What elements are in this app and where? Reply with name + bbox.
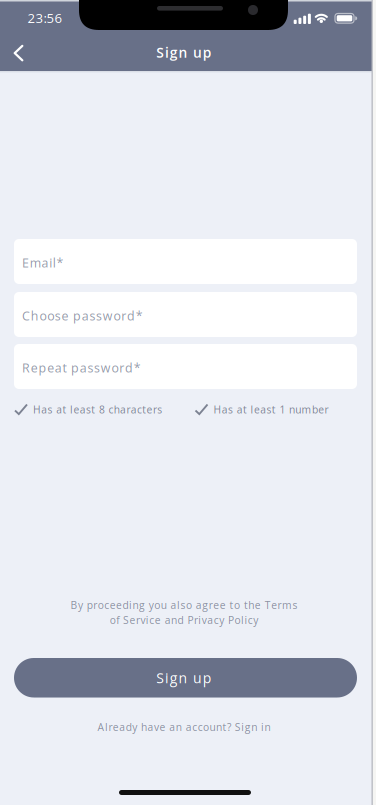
staticText: Sign up: [156, 668, 212, 687]
staticText: Email*: [22, 254, 63, 271]
staticText: 23:56: [27, 9, 62, 27]
staticText: Sign up: [156, 43, 212, 62]
button[interactable]: Sign up: [14, 658, 357, 697]
staticText: Has at least 1 number: [213, 402, 328, 416]
button[interactable]: Choose password*: [14, 292, 357, 337]
staticText: Has at least 8 characters: [33, 402, 162, 416]
button[interactable]: By proceeding you also agree to the Term…: [0, 598, 368, 627]
staticText: Repeat password*: [22, 359, 141, 376]
staticText: of Service and Privacy Policy: [110, 613, 258, 627]
button[interactable]: Email*: [14, 239, 357, 284]
button[interactable]: Repeat password*: [14, 344, 357, 389]
button[interactable]: Already have an account? Sign in: [0, 720, 368, 734]
staticText: By proceeding you also agree to the Term…: [70, 598, 297, 612]
button[interactable]: Back: [0, 33, 40, 73]
staticText: Choose password*: [22, 307, 143, 324]
staticText: Already have an account? Sign in: [97, 720, 270, 734]
